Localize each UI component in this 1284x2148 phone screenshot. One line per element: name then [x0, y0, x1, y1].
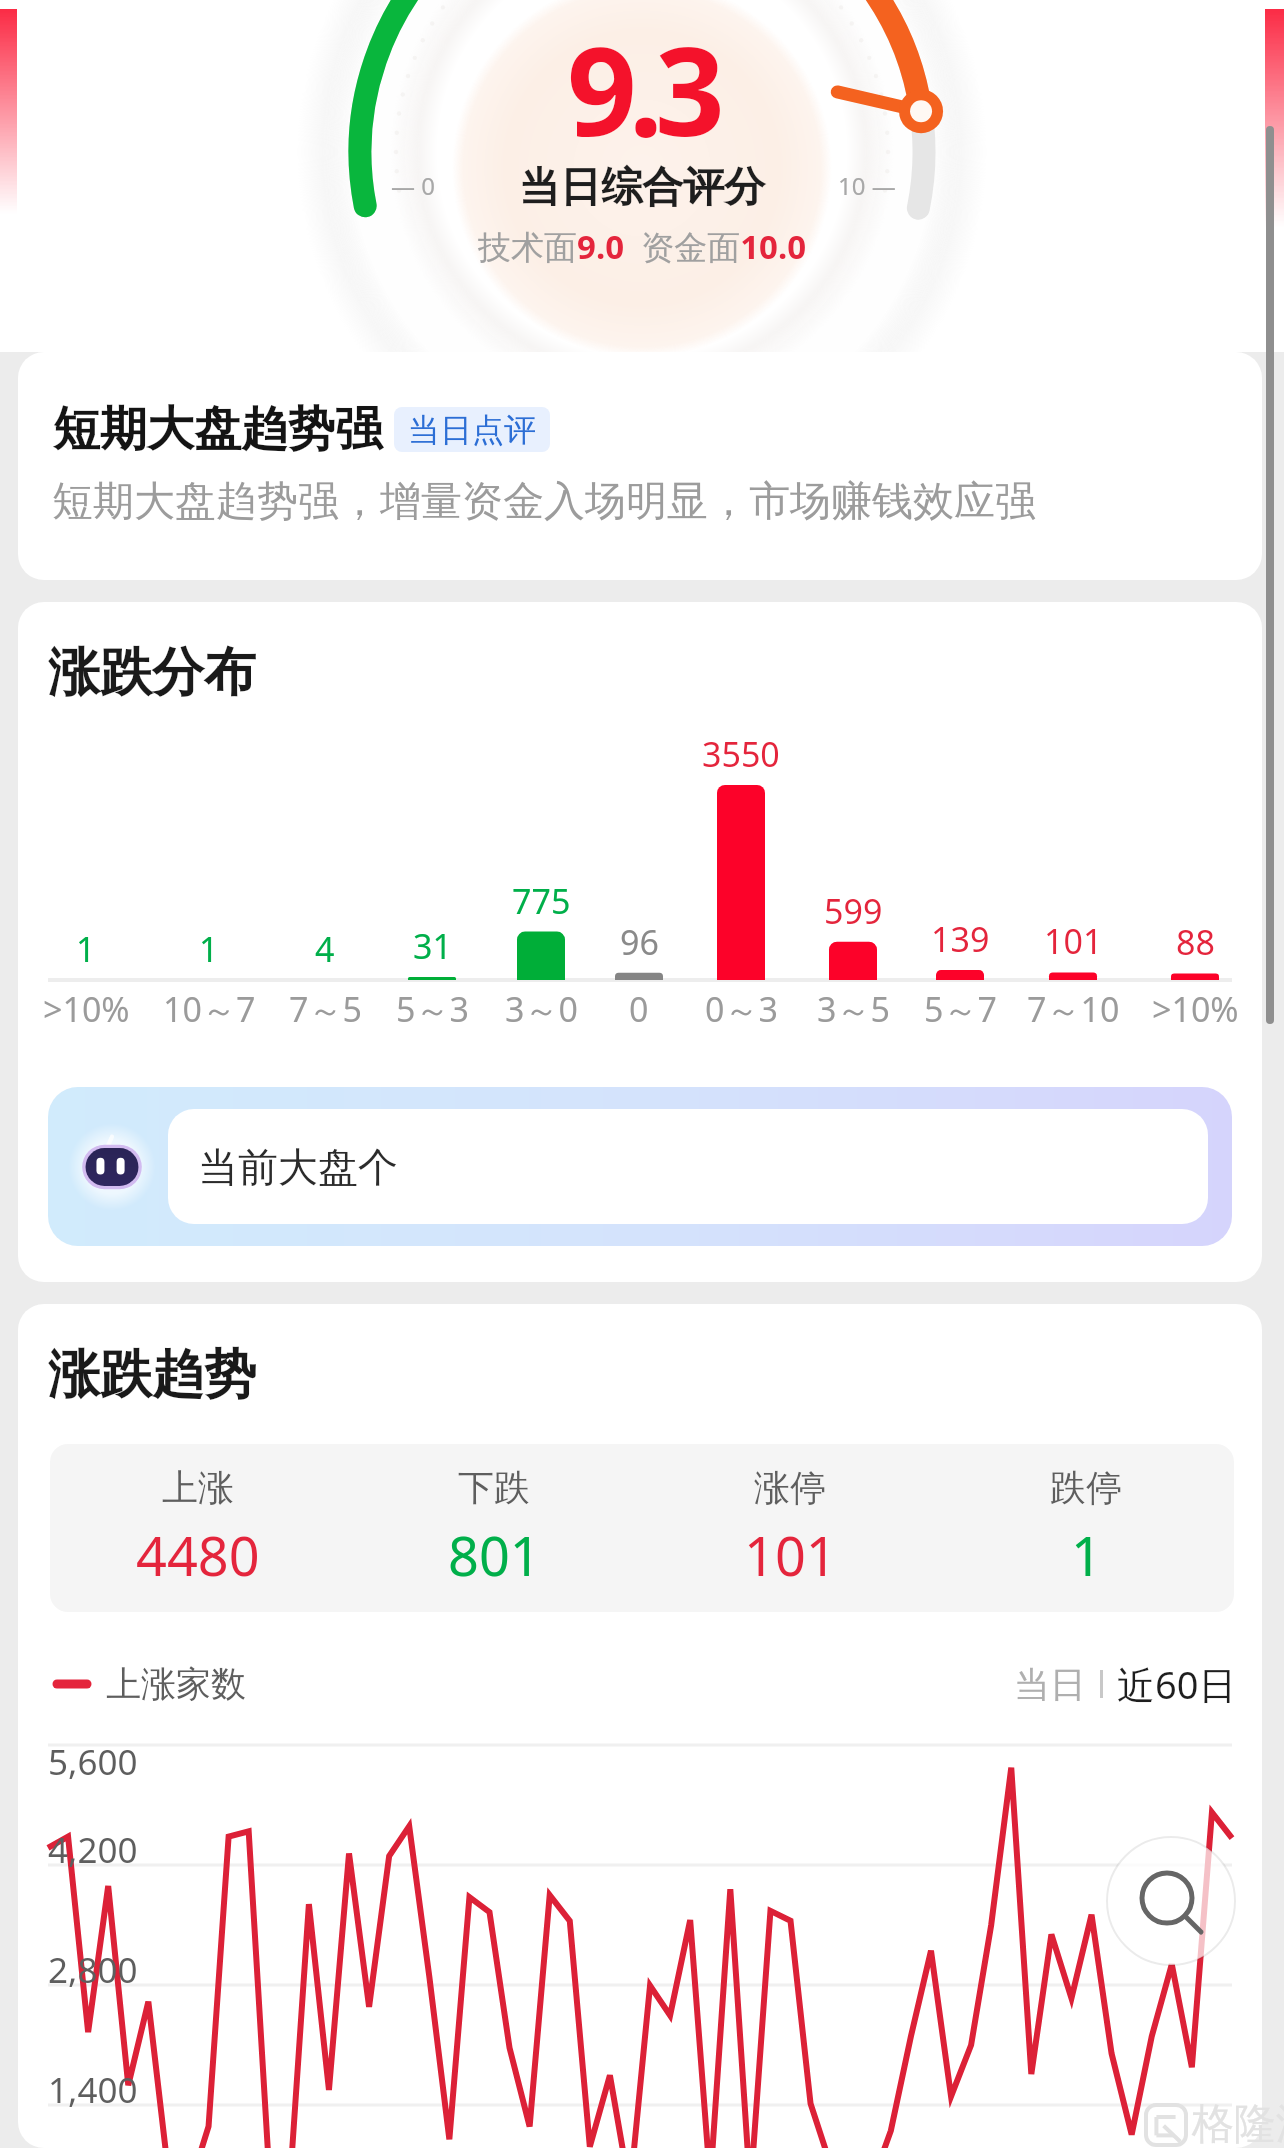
button[interactable]: 当日 — [1010, 1656, 1090, 1713]
staticText: 101 — [744, 1518, 837, 1592]
staticText: 7～10 — [1027, 986, 1120, 1032]
other: AI assistant — [70, 1125, 154, 1209]
staticText: 5～3 — [396, 986, 469, 1032]
button[interactable]: Zoom chart — [1107, 1837, 1235, 1965]
staticText: 101 — [1044, 918, 1103, 964]
staticText: 0～3 — [705, 986, 778, 1032]
staticText: 1 — [76, 926, 96, 972]
staticText: 801 — [448, 1518, 541, 1592]
staticText: 5～7 — [924, 986, 997, 1032]
button[interactable]: 涨跌分布 — [18, 602, 1262, 1282]
staticText: 139 — [931, 916, 990, 962]
staticText: 跌停 — [1050, 1465, 1122, 1510]
staticText: 1 — [199, 926, 219, 972]
staticText: 格隆汇 — [1192, 2098, 1284, 2148]
staticText: 0 — [629, 986, 649, 1032]
staticText: 10 — — [838, 169, 896, 202]
staticText: 599 — [824, 888, 883, 934]
staticText: >10% — [43, 986, 130, 1032]
staticText: 4 — [315, 926, 335, 972]
staticText: 涨跌趋势 — [48, 1342, 256, 1408]
staticText: 当前大盘个 — [198, 1142, 398, 1192]
staticText: 当日综合评分 — [519, 162, 765, 214]
staticText: 2,800 — [48, 1946, 138, 1994]
staticText: 下跌 — [458, 1465, 530, 1510]
staticText: 当日 — [1014, 1662, 1086, 1707]
staticText: 1 — [1071, 1518, 1102, 1592]
staticText: 短期大盘趋势强 — [53, 400, 382, 459]
staticText: 3～5 — [817, 986, 890, 1032]
staticText: 4480 — [136, 1518, 260, 1592]
staticText: 88 — [1176, 919, 1215, 965]
staticText: 96 — [620, 919, 659, 965]
staticText: 技术面9.0 资金面10.0 — [478, 224, 807, 269]
staticText: 3550 — [702, 731, 780, 777]
button[interactable]: 当日点评 — [394, 407, 550, 452]
staticText: 3～0 — [505, 986, 578, 1032]
staticText: 31 — [413, 923, 452, 969]
button[interactable]: 近60日 — [1113, 1652, 1241, 1716]
button[interactable]: 短期大盘趋势强 — [18, 352, 1262, 580]
staticText: >10% — [1152, 986, 1239, 1032]
staticText: 4,200 — [48, 1826, 138, 1874]
staticText: 上涨家数 — [106, 1662, 246, 1706]
button[interactable]: 涨跌趋势 — [18, 1304, 1262, 2148]
staticText: 9.3 — [567, 6, 717, 172]
staticText: 1,400 — [48, 2066, 138, 2114]
staticText: 当日点评 — [408, 410, 536, 450]
staticText: 7～5 — [289, 986, 362, 1032]
button[interactable]: AI assistant — [48, 1087, 1232, 1246]
staticText: 短期大盘趋势强，增量资金入场明显，市场赚钱效应强 — [52, 476, 1036, 528]
staticText: 10～7 — [163, 986, 256, 1032]
staticText: 涨停 — [754, 1465, 826, 1510]
staticText: 775 — [512, 878, 571, 924]
staticText: — 0 — [391, 169, 435, 202]
staticText: 上涨 — [162, 1465, 234, 1510]
staticText: 近60日 — [1117, 1658, 1237, 1710]
staticText: 5,600 — [48, 1738, 138, 1786]
staticText: 涨跌分布 — [48, 640, 256, 706]
